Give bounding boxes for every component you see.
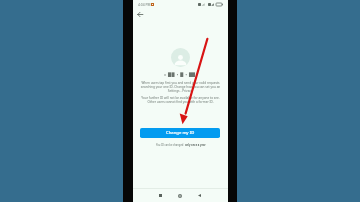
button[interactable]: Back <box>193 189 205 201</box>
button[interactable]: Recent apps <box>154 189 166 201</box>
staticText: You ID can be changed <box>156 143 185 146</box>
button[interactable]: Home <box>174 190 186 202</box>
staticText: Change my ID <box>166 130 195 136</box>
staticText: Your further ID will not be available fo… <box>136 96 225 104</box>
staticText: only once a year <box>185 143 206 146</box>
button[interactable]: Change my ID <box>140 128 220 138</box>
button[interactable]: Back <box>134 8 146 20</box>
staticText: When users tap first you and send your v… <box>138 81 223 93</box>
staticText: 4:04 PM <box>138 2 151 6</box>
staticText: ▫ █ █ ∙ █ ∙ ██ <box>163 72 196 77</box>
